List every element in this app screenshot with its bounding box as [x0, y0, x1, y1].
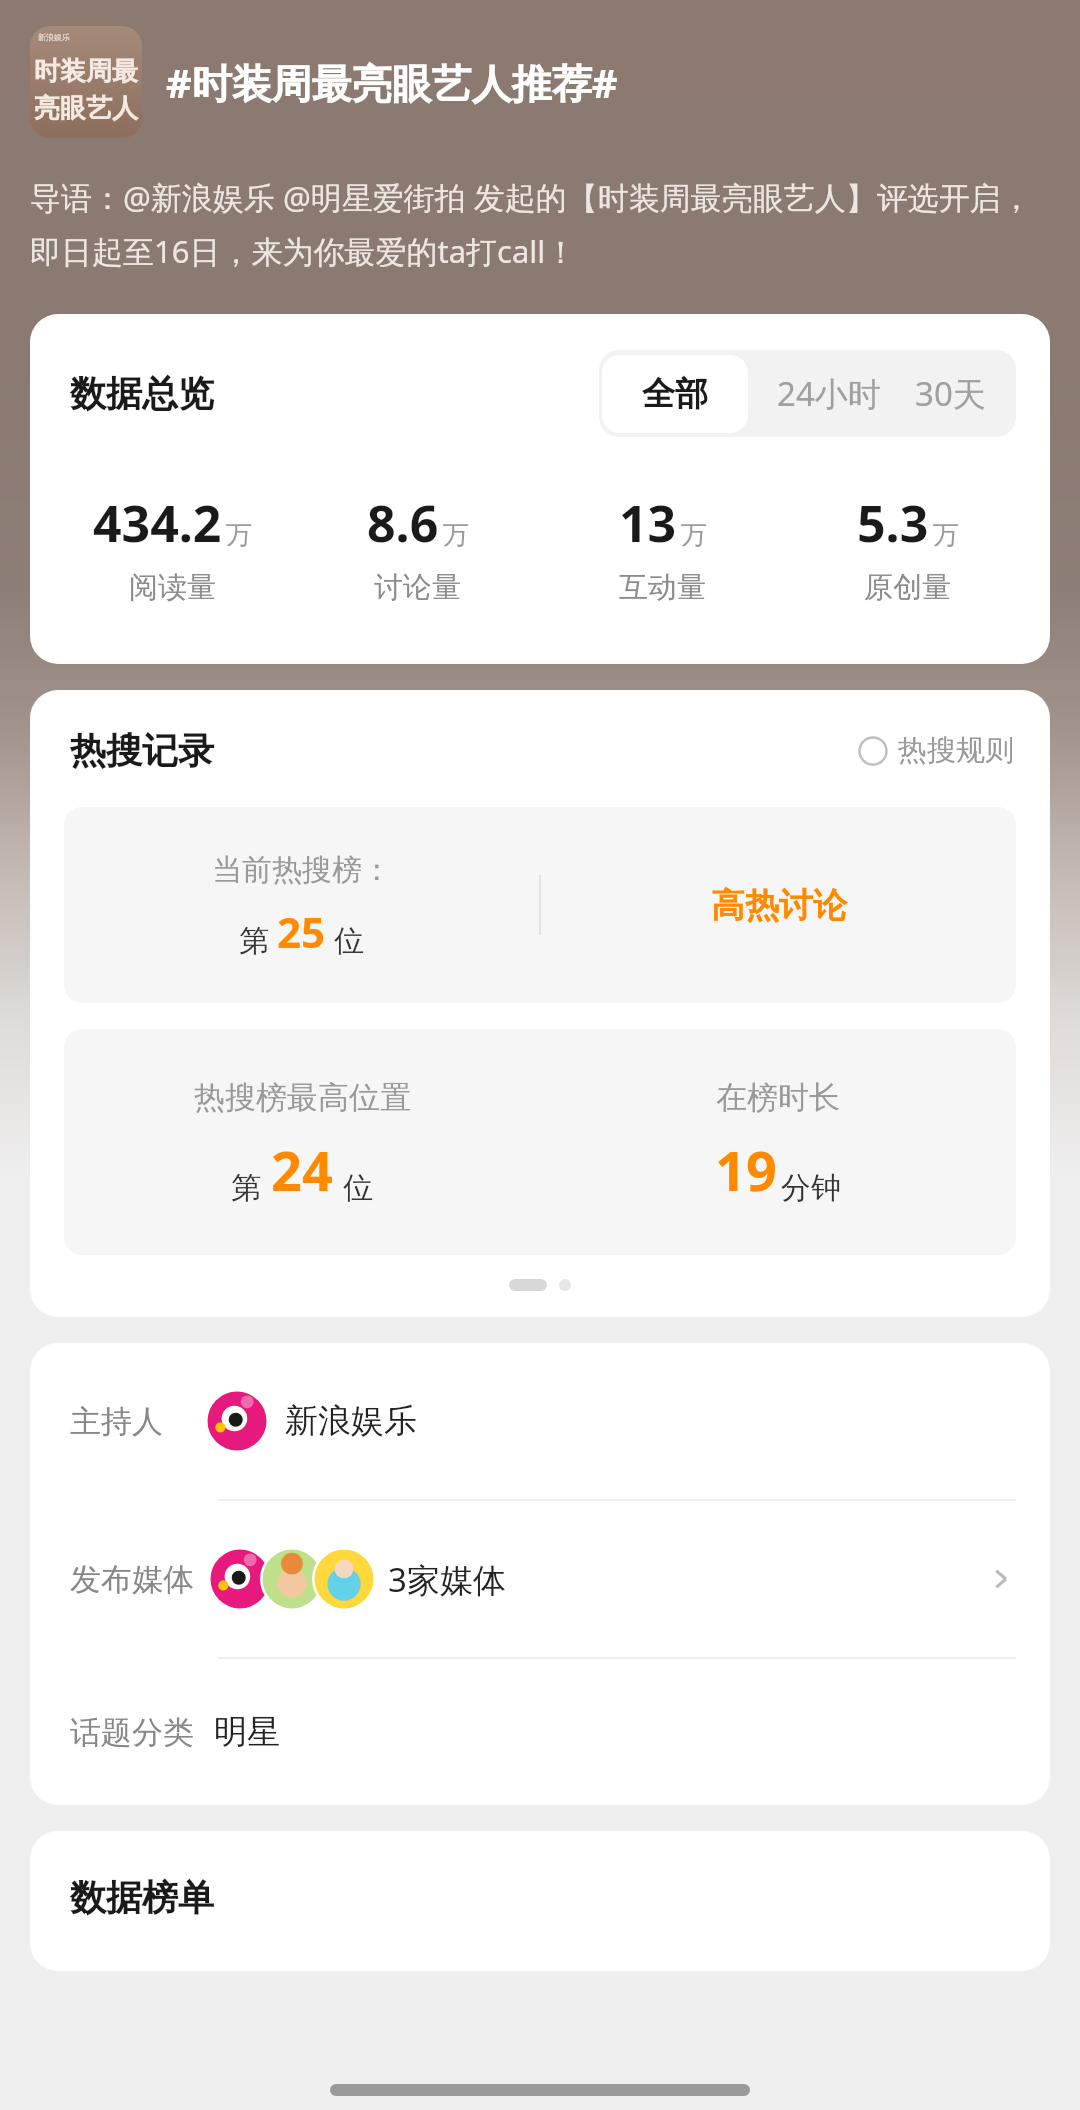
staticText: 3家媒体 [388, 1557, 506, 1602]
button[interactable]: 热搜规则 [858, 732, 1014, 769]
staticText: 第 [239, 922, 269, 960]
staticText: 阅读量 [129, 569, 216, 606]
staticText: 当前热搜榜： [212, 851, 392, 889]
staticText: 第 [231, 1169, 261, 1207]
staticText: 高热讨论 [711, 884, 847, 927]
staticText: 发布媒体 [70, 1560, 194, 1599]
button[interactable]: 24小时 [751, 350, 907, 437]
staticText: 24 [271, 1133, 333, 1207]
staticText: 万 [443, 519, 469, 552]
staticText: 数据总览 [70, 371, 214, 416]
staticText: 位 [343, 1169, 373, 1207]
staticText: 13 [619, 489, 677, 557]
staticText: 数据榜单 [70, 1875, 214, 1920]
button[interactable]: 全部 [602, 355, 748, 433]
staticText: 主持人 [70, 1402, 163, 1441]
other: 查看发布媒体 [986, 1564, 1016, 1594]
staticText: 新浪娱乐 [38, 32, 70, 42]
button[interactable]: 13 [540, 489, 785, 606]
staticText: 万 [681, 519, 707, 552]
staticText: 原创量 [864, 569, 951, 606]
staticText: 话题分类 [70, 1713, 194, 1752]
staticText: 8.6 [367, 489, 439, 557]
button[interactable]: 主持人 [30, 1343, 1050, 1499]
button[interactable]: 434.2 [50, 489, 295, 606]
staticText: 19 [715, 1133, 777, 1207]
staticText: 万 [226, 519, 252, 552]
staticText: 明星 [214, 1711, 280, 1753]
staticText: 热搜榜最高位置 [194, 1078, 411, 1117]
button[interactable]: 30天 [907, 350, 1016, 437]
staticText: 分钟 [781, 1169, 841, 1207]
staticText: 在榜时长 [716, 1078, 840, 1117]
staticText: 导语：@新浪娱乐 @明星爱街拍 发起的【时装周最亮眼艺人】评选开启，即日起至16… [30, 176, 1050, 272]
staticText: 全部 [642, 373, 708, 415]
button[interactable]: 当前热搜榜： [64, 807, 1016, 1003]
button[interactable]: 热搜榜最高位置 [64, 1029, 1016, 1255]
button[interactable]: 5.3 [785, 489, 1030, 606]
button[interactable]: 话题分类 [30, 1659, 1050, 1805]
button[interactable]: 8.6 [295, 489, 540, 606]
staticText: 位 [334, 922, 364, 960]
staticText: 25 [277, 903, 326, 960]
staticText: 24小时 [777, 371, 881, 416]
staticText: 5.3 [857, 489, 929, 557]
staticText: 讨论量 [374, 569, 461, 606]
staticText: #时装周最亮眼艺人推荐# [166, 55, 1056, 110]
staticText: 时装周最 [34, 55, 138, 88]
staticText: 新浪娱乐 [285, 1400, 417, 1442]
staticText: 万 [933, 519, 959, 552]
staticText: 亮眼艺人 [34, 92, 138, 125]
staticText: 热搜记录 [70, 728, 214, 773]
staticText: 434.2 [93, 489, 222, 557]
staticText: 30天 [915, 371, 986, 416]
staticText: 互动量 [619, 569, 706, 606]
button[interactable]: 发布媒体 [30, 1501, 1050, 1657]
button[interactable]: 时装周最 [30, 26, 142, 138]
staticText: 热搜规则 [898, 732, 1014, 769]
